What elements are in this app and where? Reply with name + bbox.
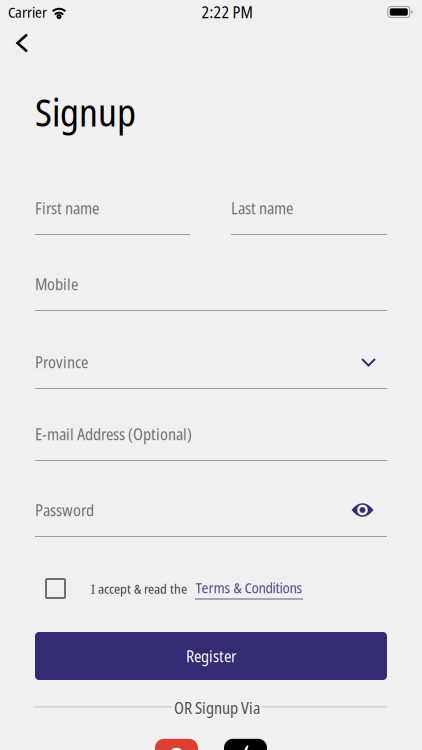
staticText: Terms & Conditions bbox=[195, 578, 302, 598]
staticText: 2:22 PM bbox=[201, 1, 252, 23]
staticText: E-mail Address (Optional) bbox=[35, 423, 192, 445]
staticText: Register bbox=[186, 645, 236, 667]
staticText: I accept & read the bbox=[91, 579, 187, 598]
staticText: OR Signup Via bbox=[174, 697, 260, 719]
button[interactable]: I accept and read the terms bbox=[46, 579, 65, 598]
button[interactable]: Sign up with Google bbox=[155, 739, 198, 750]
button[interactable]: Back bbox=[0, 23, 40, 63]
staticText: Password bbox=[35, 499, 94, 521]
button[interactable]: Register bbox=[35, 632, 387, 680]
staticText: Province bbox=[35, 351, 88, 373]
staticText: First name bbox=[35, 197, 99, 219]
staticText: Signup bbox=[35, 87, 136, 137]
button[interactable]: Sign up with Apple bbox=[224, 739, 267, 750]
staticText: Carrier bbox=[8, 2, 47, 22]
button[interactable]: Terms & Conditions bbox=[195, 578, 303, 599]
staticText: Mobile bbox=[35, 273, 78, 295]
staticText: Last name bbox=[231, 197, 293, 219]
